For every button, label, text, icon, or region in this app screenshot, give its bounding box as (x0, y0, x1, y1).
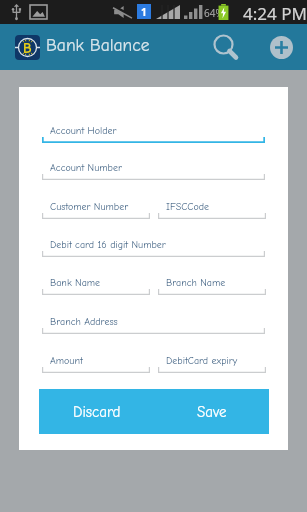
button[interactable]: Search (203, 25, 247, 69)
button[interactable]: Discard (39, 389, 154, 434)
button[interactable]: Account Holder (42, 125, 265, 147)
button[interactable]: Customer Number (42, 201, 150, 223)
staticText: Bank Name (50, 277, 101, 289)
button[interactable]: Branch Address (42, 316, 265, 338)
staticText: Save (197, 403, 227, 420)
staticText: Discard (73, 403, 121, 420)
button[interactable]: Add (258, 25, 302, 69)
staticText: Branch Address (50, 316, 118, 328)
staticText: Branch Name (166, 277, 226, 289)
button[interactable]: Branch Name (158, 277, 266, 299)
staticText: IFSCCode (166, 201, 210, 213)
staticText: 1 (141, 5, 147, 19)
button[interactable]: Amount (42, 355, 150, 377)
staticText: Account Number (50, 162, 122, 174)
staticText: Debit card 16 digit Number (50, 239, 166, 251)
staticText: B (23, 40, 32, 56)
button[interactable]: IFSCCode (158, 201, 266, 223)
staticText: Customer Number (50, 201, 129, 213)
button[interactable]: Account Number (42, 162, 265, 184)
staticText: Amount (50, 355, 83, 367)
button[interactable]: DebitCard expiry (158, 355, 266, 377)
staticText: 4:24 PM (243, 2, 307, 25)
staticText: 64% (204, 6, 224, 20)
staticText: DebitCard expiry (166, 355, 238, 367)
staticText: Bank Balance (46, 35, 150, 55)
staticText: Account Holder (50, 125, 117, 137)
button[interactable]: Debit card 16 digit Number (42, 239, 265, 261)
button[interactable]: Save (154, 389, 269, 434)
button[interactable]: Bank Name (42, 277, 150, 299)
